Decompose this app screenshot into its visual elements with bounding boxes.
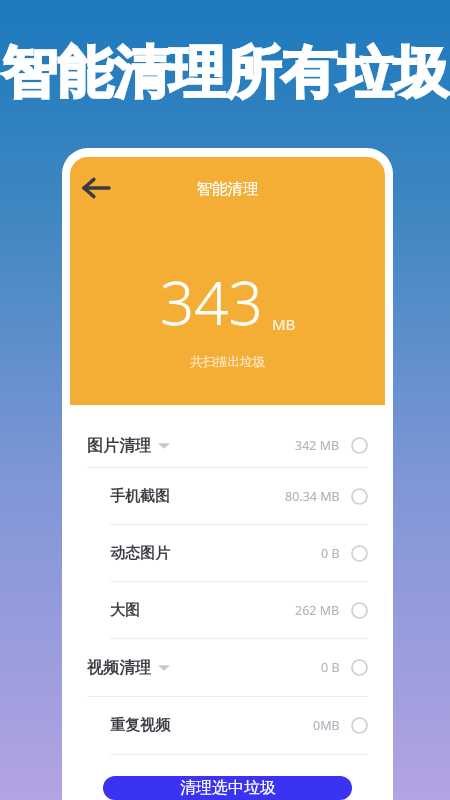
staticText: 重复视频 — [110, 716, 170, 735]
staticText: 智能清理所有垃圾 — [0, 38, 450, 109]
staticText: 342 MB — [295, 437, 340, 454]
staticText: 343 — [160, 261, 263, 343]
button[interactable]: 清理选中垃圾 — [103, 776, 352, 800]
staticText: 共扫描出垃圾 — [190, 354, 265, 370]
staticText: 智能清理 — [70, 179, 385, 199]
staticText: MB — [272, 314, 296, 334]
staticText: 0 B — [321, 659, 340, 676]
staticText: 动态图片 — [110, 544, 170, 563]
button[interactable]: 手机截图 — [70, 468, 385, 524]
button[interactable]: Back — [72, 165, 118, 211]
button[interactable]: 视频清理 — [70, 639, 385, 696]
staticText: 80.34 MB — [285, 488, 340, 505]
staticText: 大图 — [110, 601, 140, 620]
button[interactable]: 大图 — [70, 582, 385, 638]
staticText: 手机截图 — [110, 487, 170, 506]
button[interactable]: 图片清理 — [70, 424, 385, 467]
staticText: 视频清理 — [87, 658, 151, 678]
staticText: 清理选中垃圾 — [180, 778, 276, 798]
staticText: 图片清理 — [87, 436, 151, 456]
button[interactable]: 重复视频 — [70, 697, 385, 754]
staticText: 262 MB — [295, 602, 340, 619]
staticText: 0MB — [313, 717, 340, 734]
button[interactable]: 动态图片 — [70, 525, 385, 581]
staticText: 0 B — [321, 545, 340, 562]
